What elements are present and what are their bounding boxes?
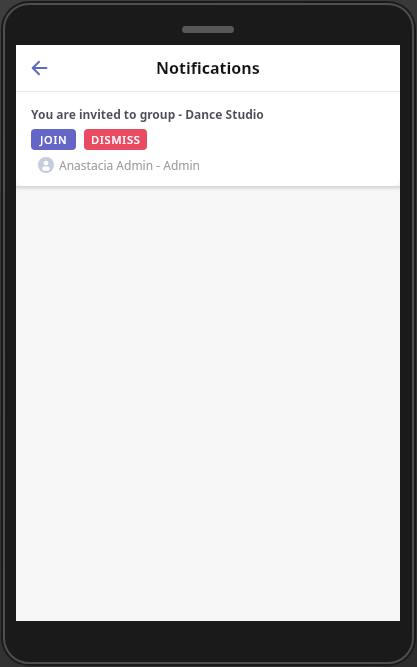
staticText: JOIN — [40, 132, 68, 147]
staticText: Notifications — [156, 57, 260, 79]
button[interactable]: You are invited to group - Dance Studio — [16, 92, 400, 186]
staticText: Anastacia Admin - Admin — [59, 157, 201, 173]
button[interactable]: JOIN — [31, 129, 76, 150]
button[interactable] — [24, 53, 54, 83]
staticText: You are invited to group - Dance Studio — [31, 106, 264, 122]
staticText: DISMISS — [91, 132, 141, 147]
button[interactable]: DISMISS — [84, 129, 147, 150]
